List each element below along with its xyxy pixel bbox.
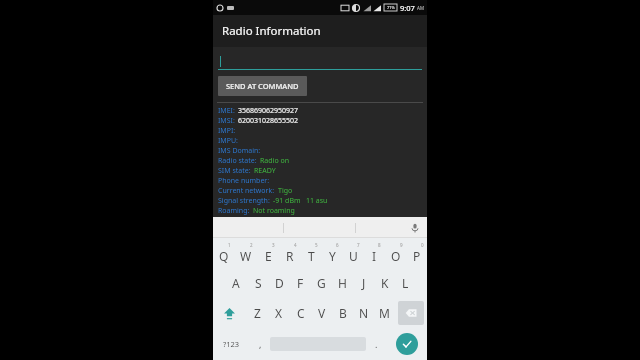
- button[interactable]: Voice input: [406, 219, 424, 237]
- staticText: 620031028655502: [238, 116, 299, 126]
- button[interactable]: X: [268, 298, 290, 328]
- button[interactable]: 4: [279, 238, 301, 268]
- staticText: ?123: [223, 339, 240, 349]
- staticText: B: [339, 305, 347, 321]
- staticText: S: [255, 275, 262, 291]
- staticText: 5: [315, 242, 318, 248]
- staticText: 1: [228, 242, 231, 248]
- staticText: Radio Information: [222, 23, 321, 39]
- staticText: IMPU:: [218, 136, 238, 146]
- button[interactable]: 5: [301, 238, 322, 268]
- button[interactable]: S: [247, 268, 269, 298]
- staticText: J: [362, 275, 366, 291]
- button[interactable]: 9: [385, 238, 406, 268]
- button[interactable]: [218, 54, 422, 70]
- button[interactable]: 7: [343, 238, 364, 268]
- button[interactable]: Backspace: [398, 301, 424, 325]
- staticText: O: [391, 248, 401, 264]
- button[interactable]: C: [290, 298, 311, 328]
- button[interactable]: F: [290, 268, 311, 298]
- staticText: SEND AT COMMAND: [226, 81, 299, 91]
- staticText: IMSI:: [218, 116, 235, 126]
- staticText: -91 dBm 11 asu: [273, 196, 328, 206]
- staticText: Q: [219, 248, 229, 264]
- button[interactable]: ,: [250, 328, 270, 360]
- staticText: Roaming:: [218, 206, 250, 216]
- staticText: 71%: [387, 5, 395, 10]
- button[interactable]: Enter: [396, 333, 418, 355]
- staticText: 4: [294, 242, 297, 248]
- button[interactable]: A: [225, 268, 247, 298]
- staticText: 7: [357, 242, 360, 248]
- staticText: E: [265, 248, 272, 264]
- staticText: M: [379, 305, 390, 321]
- button[interactable]: H: [332, 268, 353, 298]
- staticText: Signal strength:: [218, 196, 270, 206]
- staticText: Z: [254, 305, 261, 321]
- button[interactable]: Z: [246, 298, 268, 328]
- staticText: U: [349, 248, 358, 264]
- button[interactable]: SEND AT COMMAND: [218, 76, 307, 96]
- staticText: T: [308, 248, 315, 264]
- staticText: Radio on: [260, 156, 290, 166]
- staticText: IMEI:: [218, 106, 235, 116]
- staticText: Not roaming: [253, 206, 295, 216]
- staticText: 0: [421, 242, 424, 248]
- button[interactable]: B: [332, 298, 353, 328]
- button[interactable]: V: [311, 298, 332, 328]
- staticText: W: [240, 248, 252, 264]
- button[interactable]: M: [374, 298, 395, 328]
- staticText: READY: [254, 166, 276, 176]
- staticText: 8: [378, 242, 381, 248]
- staticText: IMPI:: [218, 126, 236, 136]
- staticText: SIM state:: [218, 166, 251, 176]
- staticText: V: [318, 305, 326, 321]
- staticText: ,: [259, 338, 262, 350]
- button[interactable]: Shift: [213, 298, 246, 328]
- staticText: IMS Domain:: [218, 146, 261, 156]
- staticText: 6: [336, 242, 339, 248]
- staticText: Current network:: [218, 186, 275, 196]
- staticText: F: [297, 275, 304, 291]
- button[interactable]: 6: [322, 238, 343, 268]
- staticText: L: [402, 275, 409, 291]
- staticText: K: [381, 275, 389, 291]
- button[interactable]: L: [395, 268, 416, 298]
- staticText: A: [232, 275, 240, 291]
- button[interactable]: 2: [235, 238, 257, 268]
- staticText: G: [317, 275, 326, 291]
- staticText: 9:07: [400, 3, 415, 13]
- button[interactable]: K: [374, 268, 395, 298]
- staticText: 356869062950927: [238, 106, 299, 116]
- staticText: P: [413, 248, 421, 264]
- button[interactable]: N: [353, 298, 374, 328]
- staticText: Tigo: [278, 186, 293, 196]
- button[interactable]: G: [311, 268, 332, 298]
- staticText: 9: [400, 242, 403, 248]
- button[interactable]: 8: [364, 238, 385, 268]
- staticText: H: [338, 275, 347, 291]
- staticText: N: [359, 305, 369, 321]
- staticText: AM: [417, 5, 424, 11]
- staticText: .: [375, 338, 378, 350]
- staticText: Radio state:: [218, 156, 257, 166]
- staticText: C: [297, 305, 305, 321]
- button[interactable]: .: [366, 328, 386, 360]
- button[interactable]: J: [353, 268, 374, 298]
- staticText: Phone number:: [218, 176, 270, 186]
- staticText: 2: [250, 242, 253, 248]
- button[interactable]: 1: [213, 238, 235, 268]
- staticText: R: [286, 248, 294, 264]
- staticText: I: [372, 248, 377, 264]
- staticText: D: [275, 275, 284, 291]
- button[interactable]: 3: [257, 238, 279, 268]
- button[interactable]: ?123: [213, 328, 250, 360]
- staticText: 3: [272, 242, 275, 248]
- staticText: Y: [329, 248, 336, 264]
- button[interactable]: 0: [406, 238, 427, 268]
- button[interactable]: D: [269, 268, 290, 298]
- staticText: X: [275, 305, 283, 321]
